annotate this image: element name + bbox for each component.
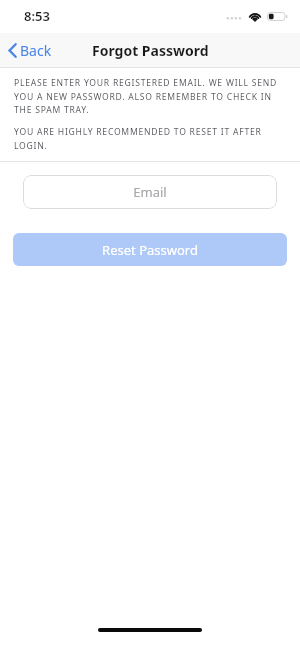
staticText: Email: [133, 183, 167, 201]
staticText: Forgot Password: [92, 41, 209, 60]
button[interactable]: Email: [23, 175, 277, 209]
staticText: YOU ARE HIGHLY RECOMMENDED TO RESET IT A…: [14, 126, 286, 151]
staticText: Back: [20, 41, 52, 60]
staticText: 8:53: [24, 7, 50, 25]
staticText: PLEASE ENTER YOUR REGISTERED EMAIL. WE W…: [14, 77, 286, 115]
button[interactable]: Reset Password: [13, 233, 287, 266]
button[interactable]: Back: [0, 35, 62, 66]
staticText: Reset Password: [102, 241, 198, 259]
